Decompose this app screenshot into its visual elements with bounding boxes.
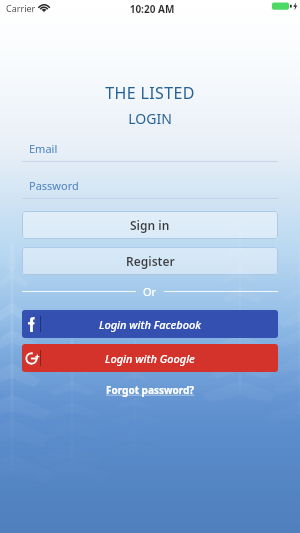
staticText: Login with Google xyxy=(105,351,195,366)
staticText: 10:20 AM xyxy=(2,2,300,16)
staticText: Login with Facebook xyxy=(99,317,201,332)
button[interactable]: Login with Google xyxy=(22,344,278,372)
staticText: THE LISTED xyxy=(0,82,300,104)
staticText: LOGIN xyxy=(0,109,300,128)
button[interactable]: Forgot password? xyxy=(100,381,201,399)
staticText: Email xyxy=(29,141,58,156)
button[interactable]: Password xyxy=(22,174,278,199)
button[interactable]: Email xyxy=(22,137,278,162)
button[interactable]: Register xyxy=(22,247,278,275)
staticText: Sign in xyxy=(130,217,170,233)
staticText: Carrier xyxy=(6,2,36,14)
button[interactable]: Sign in xyxy=(22,211,278,239)
staticText: Or xyxy=(143,284,157,299)
staticText: Forgot password? xyxy=(106,383,195,397)
staticText: Password xyxy=(29,178,79,193)
button[interactable]: Login with Facebook xyxy=(22,310,278,338)
staticText: Register xyxy=(126,253,175,269)
